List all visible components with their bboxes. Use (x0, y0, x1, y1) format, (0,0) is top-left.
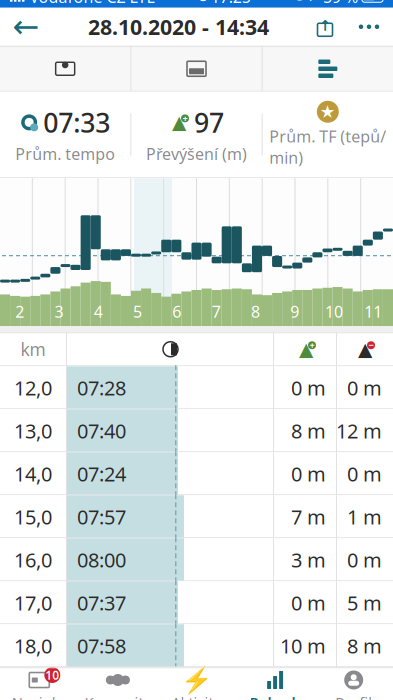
button[interactable]: Pokrok (236, 667, 314, 700)
staticText: 12 m (336, 417, 382, 444)
staticText: 17:25 (211, 0, 251, 7)
staticText: 0 m (291, 460, 326, 487)
staticText: 10 (45, 667, 59, 683)
staticText: 07:58 (77, 632, 126, 659)
button[interactable]: Map (0, 46, 130, 92)
staticText: ⏱ (294, 0, 304, 3)
staticText: Novinky (12, 692, 67, 700)
button[interactable]: Share (305, 8, 345, 46)
button[interactable]: 16,0 (0, 538, 393, 581)
staticText: 12,0 (14, 374, 52, 401)
staticText: 16,0 (14, 546, 52, 573)
staticText: 13,0 (14, 417, 52, 444)
staticText: 3 m (291, 546, 326, 573)
button[interactable]: 17,0 (0, 581, 393, 624)
staticText: 07:57 (77, 503, 126, 530)
staticText: 9 (290, 301, 299, 322)
staticText: + (309, 339, 314, 351)
staticText: ⚡ (180, 665, 212, 694)
staticText: 5 (133, 301, 142, 322)
staticText: 18,0 (14, 632, 52, 659)
button[interactable]: 13,0 (0, 409, 393, 452)
button[interactable]: 10 (0, 667, 79, 700)
button[interactable]: 15,0 (0, 495, 393, 538)
staticText: 3 (54, 301, 63, 322)
staticText: Převýšení (m) (146, 143, 247, 164)
button[interactable]: 14,0 (0, 452, 393, 495)
staticText: ← (12, 9, 39, 45)
staticText: − (368, 339, 373, 351)
button[interactable]: 12,0 (0, 366, 393, 409)
button[interactable]: Profil (314, 667, 393, 700)
staticText: 11 (364, 301, 382, 322)
staticText: 07:40 (77, 417, 126, 444)
staticText: 1 m (347, 503, 382, 530)
button[interactable]: Splits chart (263, 46, 393, 92)
staticText: + (182, 112, 187, 125)
staticText: 07:37 (77, 589, 126, 616)
staticText: ➤ (308, 0, 319, 4)
staticText: 0 m (291, 589, 326, 616)
staticText: ▲ (358, 339, 372, 360)
staticText: 0 m (291, 374, 326, 401)
staticText: 8 (251, 301, 260, 322)
staticText: 2 (15, 301, 24, 322)
staticText: 6 (172, 301, 181, 322)
staticText: ▲ (172, 112, 186, 133)
staticText: 14,0 (14, 460, 52, 487)
button[interactable]: ⚡ (157, 667, 236, 700)
staticText: 97 (194, 105, 224, 140)
staticText: 5 m (347, 589, 382, 616)
staticText: 8 m (347, 632, 382, 659)
button[interactable]: More options (345, 8, 393, 46)
staticText: 07:28 (77, 374, 126, 401)
staticText: 10 (325, 301, 343, 322)
staticText: ▲ (299, 339, 313, 360)
staticText: Aktivita (171, 692, 221, 700)
staticText: Vodafone CZ LTE (25, 0, 155, 7)
staticText: 7 (212, 301, 221, 322)
staticText: Profil (335, 692, 372, 700)
staticText: 4 (94, 301, 103, 322)
staticText: km (20, 338, 45, 361)
staticText: Prům. TF (tepů/min) (269, 126, 386, 168)
staticText: 28.10.2020 - 14:34 (88, 13, 269, 41)
staticText: Komunita (84, 692, 151, 700)
staticText: 08:00 (77, 546, 126, 573)
staticText: 59 % (323, 0, 358, 7)
button[interactable]: Komunita (79, 667, 157, 700)
staticText: Pokrok (250, 692, 301, 700)
staticText: 7 m (291, 503, 326, 530)
staticText: 0 m (347, 546, 382, 573)
staticText: 10 m (280, 632, 326, 659)
staticText: 0 m (347, 460, 382, 487)
staticText: ↑ (319, 17, 331, 34)
staticText: 07:33 (43, 105, 110, 140)
staticText: 17,0 (14, 589, 52, 616)
button[interactable]: Back (0, 8, 52, 46)
button[interactable]: Photos (131, 46, 262, 92)
staticText: 8 m (291, 417, 326, 444)
staticText: 0 m (347, 374, 382, 401)
button[interactable]: 18,0 (0, 624, 393, 667)
staticText: ★ (320, 102, 336, 122)
staticText: 07:24 (77, 460, 126, 487)
staticText: 15,0 (14, 503, 52, 530)
staticText: Prům. tempo (15, 143, 115, 164)
